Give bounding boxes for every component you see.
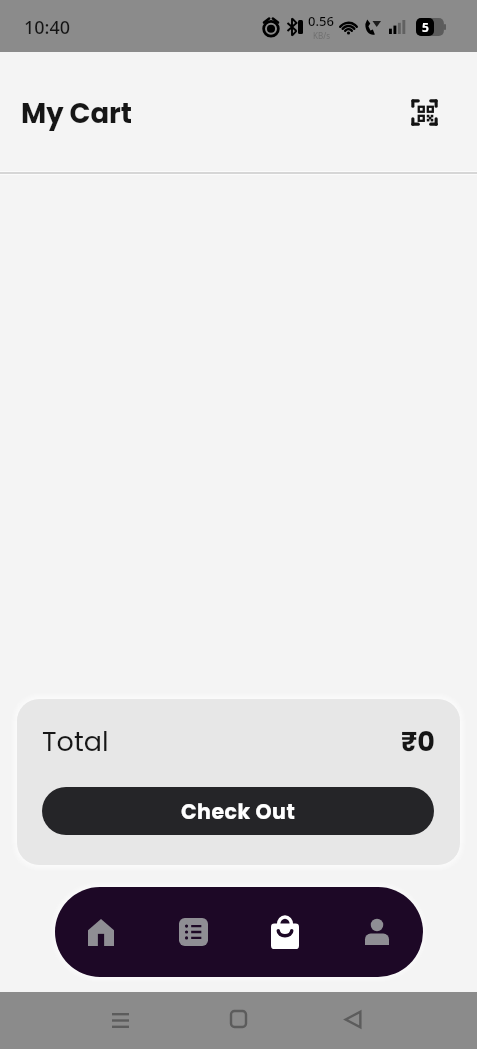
staticText: My Cart bbox=[21, 94, 133, 132]
button[interactable]: Profile bbox=[331, 887, 423, 977]
staticText: 10:40 bbox=[24, 15, 71, 40]
button[interactable]: Cart bbox=[239, 887, 331, 977]
staticText: 5 bbox=[422, 19, 429, 35]
staticText: KB/s bbox=[313, 30, 330, 41]
staticText: ₹0 bbox=[401, 723, 435, 761]
button[interactable]: Scan QR code bbox=[407, 95, 441, 129]
button[interactable]: Recent apps bbox=[104, 1004, 136, 1036]
button[interactable]: Home bbox=[55, 887, 147, 977]
button[interactable]: Check Out bbox=[42, 787, 434, 835]
staticText: Total bbox=[42, 723, 109, 761]
button[interactable]: Back bbox=[337, 1003, 369, 1035]
button[interactable]: Orders bbox=[147, 887, 239, 977]
staticText: 0.56 bbox=[308, 12, 334, 30]
staticText: Check Out bbox=[181, 797, 296, 826]
button[interactable]: Home bbox=[222, 1003, 254, 1035]
